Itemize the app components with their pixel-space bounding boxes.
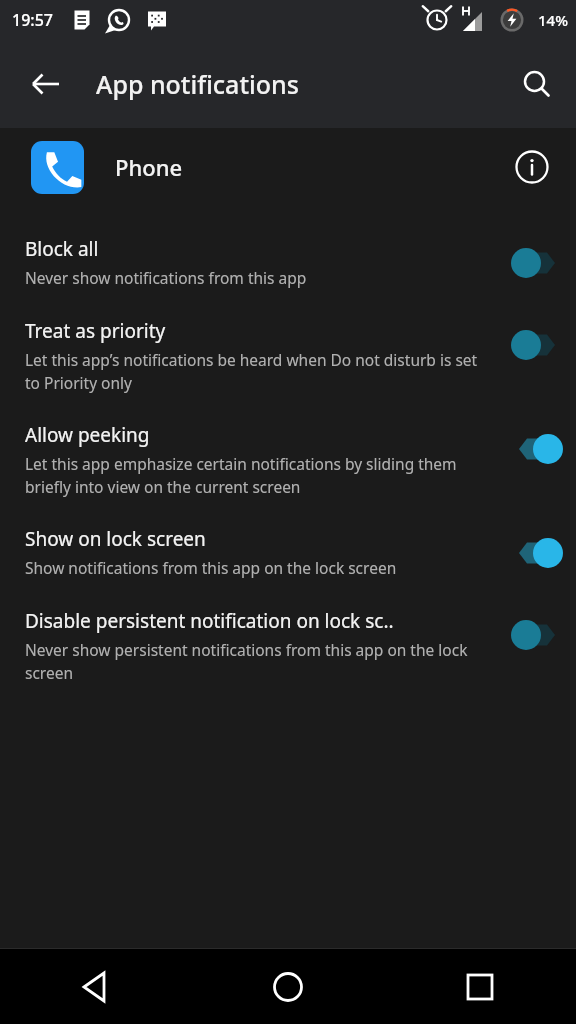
button[interactable]: Phone — [0, 128, 576, 206]
button[interactable]: App info — [506, 141, 558, 193]
staticText: Block all — [25, 236, 99, 262]
staticText: App notifications — [96, 67, 299, 101]
button[interactable]: Allow peeking, on — [500, 422, 576, 476]
staticText: 14% — [538, 10, 568, 30]
staticText: Treat as priority — [25, 318, 166, 344]
button[interactable]: Block all — [0, 206, 576, 290]
staticText: 19:57 — [12, 9, 53, 31]
button[interactable]: Disable persistent notification on lock … — [0, 580, 576, 684]
button[interactable]: Disable persistent notification on lock … — [500, 608, 576, 662]
button[interactable]: Show on lock screen, on — [500, 526, 576, 580]
staticText: Show notifications from this app on the … — [25, 557, 397, 578]
button[interactable]: Home — [192, 949, 384, 1024]
button[interactable]: Search — [510, 58, 562, 110]
staticText: Show on lock screen — [25, 526, 206, 552]
button[interactable]: Show on lock screen — [0, 498, 576, 580]
button[interactable]: Back — [0, 949, 192, 1024]
staticText: Allow peeking — [25, 422, 150, 448]
staticText: Never show persistent notifications from… — [25, 639, 486, 684]
staticText: Let this app’s notifications be heard wh… — [25, 349, 486, 394]
button[interactable]: Treat as priority, off — [500, 318, 576, 372]
button[interactable]: Allow peeking — [0, 394, 576, 498]
staticText: Phone — [115, 152, 183, 182]
button[interactable]: Recent apps — [384, 949, 576, 1024]
staticText: Disable persistent notification on lock … — [25, 608, 394, 634]
button[interactable]: Navigate up — [18, 56, 74, 112]
button[interactable]: Block all, off — [500, 236, 576, 290]
button[interactable]: Treat as priority — [0, 290, 576, 394]
staticText: Never show notifications from this app — [25, 267, 307, 288]
staticText: Let this app emphasize certain notificat… — [25, 453, 486, 498]
